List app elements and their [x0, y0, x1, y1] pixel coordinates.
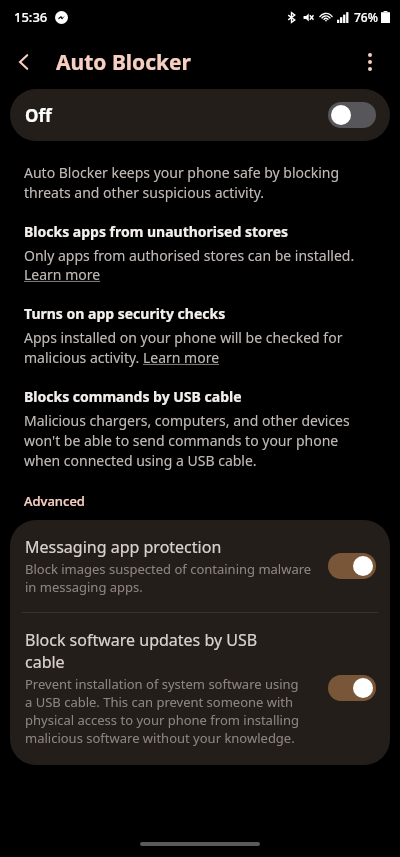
staticText: Turns on app security checks — [24, 304, 226, 323]
staticText: Block software updates by USB cable — [25, 629, 258, 673]
staticText: Messaging app protection — [25, 536, 222, 558]
staticText: Blocks apps from unauthorised stores — [24, 222, 289, 241]
button[interactable]: Messaging app protection — [10, 520, 390, 612]
staticText: Block images suspected of containing mal… — [25, 560, 312, 596]
button[interactable]: Block software updates by USB cable togg… — [328, 675, 376, 701]
staticText: Only apps from authorised stores can be … — [24, 246, 355, 265]
button[interactable]: Block software updates by USB cable — [10, 613, 390, 765]
button[interactable]: Off — [10, 89, 390, 141]
button[interactable]: Auto Blocker toggle — [328, 102, 376, 128]
button[interactable]: Learn more — [24, 265, 101, 284]
staticText: Advanced — [24, 492, 85, 510]
button[interactable]: More options — [348, 40, 392, 84]
staticText: Auto Blocker — [56, 48, 192, 77]
staticText: Learn more — [24, 265, 101, 284]
button[interactable]: Back — [0, 38, 48, 86]
button[interactable]: Apps installed on your phone will be che… — [24, 328, 343, 367]
staticText: Apps installed on your phone will be che… — [24, 328, 343, 367]
staticText: 76% — [354, 9, 378, 25]
button[interactable]: Messaging app protection toggle — [328, 553, 376, 579]
staticText: Blocks commands by USB cable — [24, 387, 242, 406]
staticText: Auto Blocker keeps your phone safe by bl… — [24, 163, 340, 202]
staticText: Malicious chargers, computers, and other… — [24, 411, 350, 470]
staticText: Prevent installation of system software … — [25, 675, 299, 747]
staticText: 15:36 — [14, 8, 48, 26]
staticText: Off — [25, 104, 52, 127]
